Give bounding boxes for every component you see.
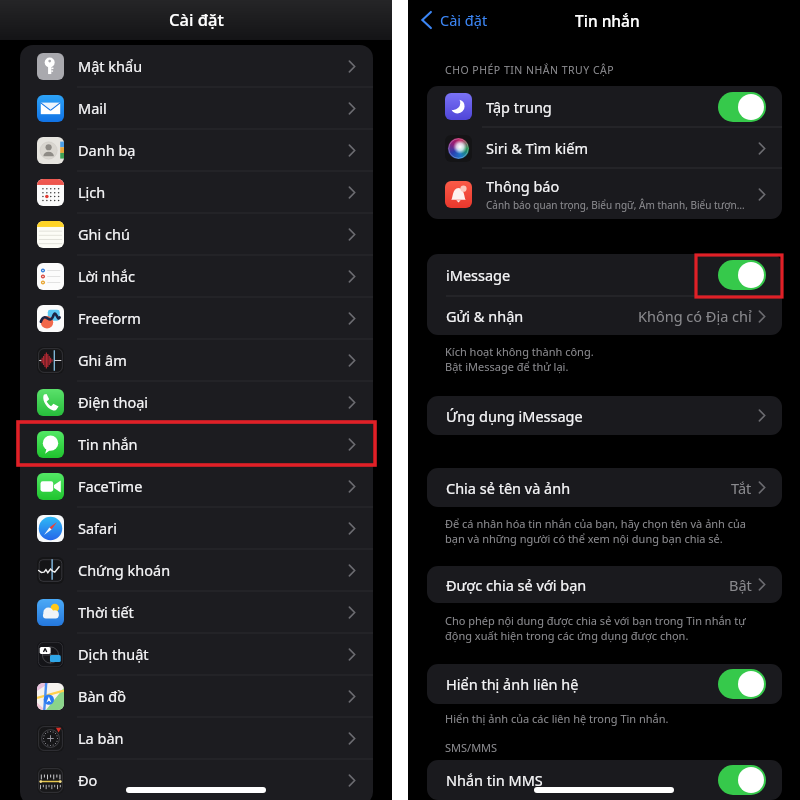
- button[interactable]: Danh bạ: [20, 129, 373, 171]
- staticText: Không có Địa chỉ: [638, 306, 752, 326]
- button[interactable]: La bàn: [20, 717, 373, 759]
- button[interactable]: Ứng dụng iMessage: [427, 396, 782, 435]
- button[interactable]: Lời nhắc: [20, 255, 373, 297]
- staticText: Danh bạ: [78, 140, 136, 160]
- staticText: Tin nhắn: [78, 434, 138, 454]
- staticText: Hiển thị ảnh của các liên hệ trong Tin n…: [445, 711, 669, 726]
- staticText: Nhắn tin MMS: [446, 770, 543, 790]
- button[interactable]: Hiển thị ảnh liên hệ on: [718, 669, 766, 699]
- staticText: Mật khẩu: [78, 56, 143, 76]
- staticText: Thời tiết: [78, 602, 134, 622]
- staticText: động xuất hiện trong các ứng dụng được c…: [445, 628, 689, 643]
- button[interactable]: Chứng khoán: [20, 549, 373, 591]
- button[interactable]: Thời tiết: [20, 591, 373, 633]
- button[interactable]: Dịch thuật: [20, 633, 373, 675]
- button[interactable]: Gửi & nhận: [427, 297, 782, 335]
- staticText: FaceTime: [78, 476, 143, 496]
- button[interactable]: Hiển thị ảnh liên hệ: [427, 664, 782, 703]
- staticText: bạn và những người có thể xem nội dung b…: [445, 531, 723, 546]
- button[interactable]: Back to Cài đặt: [417, 4, 492, 36]
- staticText: Gửi & nhận: [446, 306, 524, 326]
- staticText: Cài đặt: [440, 10, 488, 30]
- button[interactable]: iMessage: [427, 254, 782, 296]
- staticText: Tắt: [731, 478, 752, 498]
- button[interactable]: Nhắn tin MMS on: [718, 765, 766, 795]
- staticText: Chia sẻ tên và ảnh: [446, 478, 571, 498]
- button[interactable]: Tập trung: [427, 86, 782, 127]
- staticText: Cho phép nội dung được chia sẻ với bạn t…: [445, 613, 746, 628]
- staticText: Bật iMessage để thử lại.: [445, 359, 569, 374]
- button[interactable]: Được chia sẻ với bạn: [427, 566, 782, 603]
- staticText: Được chia sẻ với bạn: [446, 575, 587, 595]
- button[interactable]: Siri & Tìm kiếm: [427, 128, 782, 168]
- staticText: CHO PHÉP TIN NHẮN TRUY CẬP: [445, 63, 615, 77]
- staticText: Tin nhắn: [575, 10, 640, 31]
- button[interactable]: Safari: [20, 507, 373, 549]
- button[interactable]: Nhắn tin MMS: [427, 760, 782, 800]
- button[interactable]: Ghi chú: [20, 213, 373, 255]
- staticText: Lịch: [78, 182, 106, 202]
- staticText: Hiển thị ảnh liên hệ: [446, 674, 579, 694]
- staticText: Ghi chú: [78, 224, 130, 244]
- staticText: Ghi âm: [78, 350, 127, 370]
- button[interactable]: Chia sẻ tên và ảnh: [427, 468, 782, 507]
- staticText: Thông báo: [486, 176, 560, 196]
- staticText: Dịch thuật: [78, 644, 149, 664]
- staticText: Mail: [78, 98, 107, 118]
- staticText: Bàn đồ: [78, 686, 127, 706]
- staticText: Bật: [729, 575, 752, 595]
- button[interactable]: Mail: [20, 87, 373, 129]
- staticText: La bàn: [78, 728, 124, 748]
- button[interactable]: iMessage on: [718, 260, 766, 290]
- staticText: iMessage: [446, 265, 511, 285]
- button[interactable]: FaceTime: [20, 465, 373, 507]
- button[interactable]: Lịch: [20, 171, 373, 213]
- button[interactable]: Điện thoại: [20, 381, 373, 423]
- button[interactable]: Đo: [20, 759, 373, 800]
- staticText: Safari: [78, 518, 117, 538]
- staticText: Siri & Tìm kiếm: [486, 138, 588, 158]
- staticText: Lời nhắc: [78, 266, 136, 286]
- staticText: Điện thoại: [78, 392, 149, 412]
- button[interactable]: Mật khẩu: [20, 45, 373, 87]
- staticText: Chứng khoán: [78, 560, 171, 580]
- staticText: Đo: [78, 770, 98, 790]
- button[interactable]: Thông báo: [427, 169, 782, 219]
- staticText: Để cá nhân hóa tin nhắn của bạn, hãy chọ…: [445, 516, 747, 531]
- staticText: Ứng dụng iMessage: [446, 406, 583, 426]
- staticText: Freeform: [78, 308, 141, 328]
- staticText: Tập trung: [486, 97, 552, 117]
- staticText: Cảnh báo quan trọng, Biểu ngữ, Âm thanh,…: [486, 198, 745, 212]
- staticText: Cài đặt: [169, 8, 224, 30]
- staticText: SMS/MMS: [445, 740, 498, 755]
- button[interactable]: Tin nhắn: [20, 423, 373, 465]
- button[interactable]: Bàn đồ: [20, 675, 373, 717]
- button[interactable]: Tập trung on: [718, 92, 766, 122]
- button[interactable]: Ghi âm: [20, 339, 373, 381]
- staticText: Kích hoạt không thành công.: [445, 344, 594, 359]
- button[interactable]: Freeform: [20, 297, 373, 339]
